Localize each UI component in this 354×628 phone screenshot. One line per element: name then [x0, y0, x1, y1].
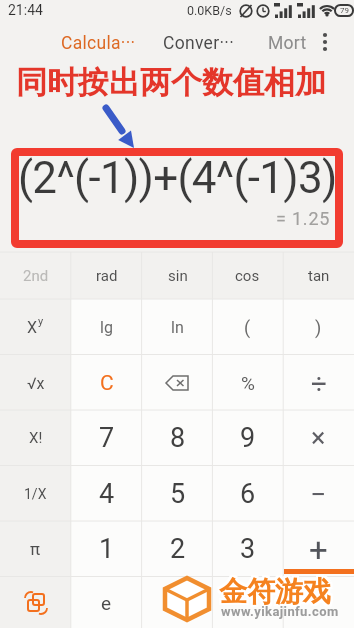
button[interactable]: ÷	[283, 355, 354, 411]
staticText: 6	[240, 478, 256, 510]
button[interactable]: Conver···	[163, 33, 235, 54]
staticText: X	[27, 318, 38, 337]
button[interactable]	[314, 30, 336, 54]
staticText: Calcula···	[61, 33, 136, 54]
staticText: www.yikajinfu.com	[221, 604, 339, 619]
staticText: y	[38, 315, 44, 328]
staticText: 0.0KB/s	[187, 3, 232, 18]
button[interactable]: √x	[0, 355, 71, 411]
staticText: 金符游戏	[221, 576, 333, 611]
button[interactable]: rad	[71, 252, 142, 299]
staticText: cos	[235, 267, 260, 285]
button[interactable]	[0, 577, 71, 628]
button[interactable]: X	[0, 299, 71, 355]
staticText: %	[241, 372, 255, 394]
staticText: 金符游戏	[221, 574, 333, 609]
staticText: 1	[99, 533, 115, 565]
button[interactable]: %	[212, 355, 283, 411]
staticText: C	[100, 371, 114, 396]
staticText: X!	[29, 429, 43, 447]
staticText: 2	[170, 533, 186, 565]
staticText: Conver···	[163, 33, 235, 54]
button[interactable]: tan	[283, 252, 354, 299]
button[interactable]: π	[0, 521, 71, 577]
button[interactable]: 1	[71, 521, 142, 577]
staticText: 3	[240, 533, 256, 565]
button[interactable]: Calcula···	[61, 33, 136, 54]
staticText: tan	[308, 267, 330, 285]
staticText: 4	[99, 478, 115, 510]
staticText: lg	[100, 318, 113, 337]
staticText: 21:44	[8, 2, 43, 18]
staticText: 金符游戏	[217, 576, 329, 611]
staticText: 金符游戏	[217, 572, 329, 607]
staticText: π	[30, 539, 41, 559]
staticText: 1/X	[24, 486, 47, 502]
button[interactable]: 6	[212, 466, 283, 522]
staticText: +	[309, 530, 328, 569]
staticText: 79	[340, 6, 349, 15]
staticText: 7	[99, 422, 115, 454]
staticText: )	[315, 317, 322, 338]
button[interactable]: 7	[71, 410, 142, 466]
button[interactable]: 1/X	[0, 466, 71, 522]
button[interactable]: sin	[142, 252, 213, 299]
staticText: (	[244, 317, 251, 338]
button[interactable]: e	[71, 577, 142, 628]
button[interactable]: 5	[142, 466, 213, 522]
staticText: e	[101, 592, 112, 614]
staticText: 金符游戏	[221, 572, 333, 607]
button[interactable]: 3	[212, 521, 283, 577]
button[interactable]: Mort	[268, 33, 307, 54]
staticText: 金符游戏	[219, 572, 331, 607]
staticText: 2nd	[23, 267, 49, 285]
staticText: Mort	[268, 33, 307, 54]
staticText: 金符游戏	[217, 574, 329, 609]
staticText: = 1.25	[276, 208, 331, 229]
button[interactable]: 2	[142, 521, 213, 577]
staticText: 同时按出两个数值相加	[16, 63, 326, 102]
button[interactable]: X!	[0, 410, 71, 466]
button[interactable]: cos	[212, 252, 283, 299]
button[interactable]: −	[283, 466, 354, 522]
staticText: (2^(-1))+(4^(-1)3)	[18, 152, 337, 204]
staticText: −	[310, 478, 327, 511]
button[interactable]: 9	[212, 410, 283, 466]
button[interactable]	[142, 355, 213, 411]
button[interactable]: (	[212, 299, 283, 355]
staticText: sin	[168, 267, 188, 285]
staticText: ÷	[311, 367, 327, 400]
button[interactable]: 4	[71, 466, 142, 522]
staticText: 金符游戏	[219, 574, 331, 609]
button[interactable]: +	[283, 521, 354, 577]
button[interactable]: ln	[142, 299, 213, 355]
staticText: √x	[27, 374, 45, 393]
staticText: 5	[170, 478, 186, 510]
staticText: rad	[96, 267, 118, 285]
button[interactable]: )	[283, 299, 354, 355]
staticText: 8	[170, 422, 186, 454]
button[interactable]: ×	[283, 410, 354, 466]
button[interactable]: C	[71, 355, 142, 411]
button[interactable]: 2nd	[0, 252, 71, 299]
staticText: 9	[240, 422, 256, 454]
staticText: ×	[311, 422, 326, 454]
staticText: ln	[171, 318, 184, 337]
button[interactable]: 8	[142, 410, 213, 466]
staticText: 金符游戏	[219, 576, 331, 611]
button[interactable]: lg	[71, 299, 142, 355]
